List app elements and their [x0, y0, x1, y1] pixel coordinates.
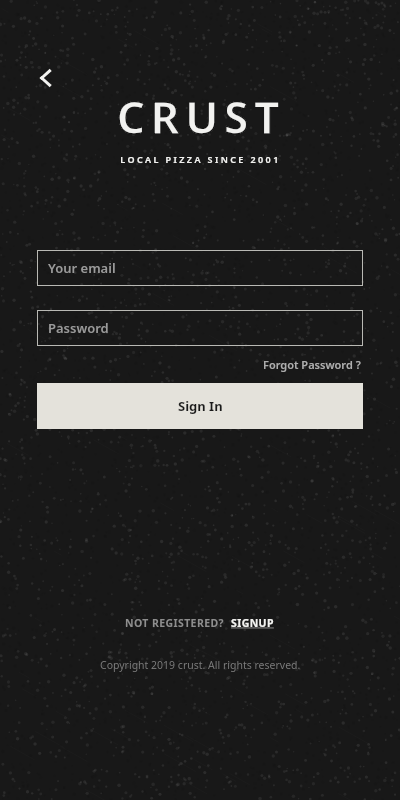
button[interactable]: SIGNUP: [230, 614, 275, 632]
staticText: NOT REGISTERED?: [125, 616, 224, 630]
staticText: Password: [48, 319, 109, 337]
staticText: Your email: [48, 259, 116, 277]
staticText: Forgot Password ?: [263, 357, 361, 372]
button[interactable]: Your email: [37, 250, 363, 286]
button[interactable]: Sign In: [37, 383, 363, 429]
staticText: SIGNUP: [231, 616, 274, 630]
staticText: Copyright 2019 crust. All rights reserve…: [100, 658, 301, 672]
button[interactable]: Back: [28, 60, 64, 96]
button[interactable]: Password: [37, 310, 363, 346]
staticText: LOCAL PIZZA SINCE 2001: [120, 153, 281, 165]
button[interactable]: Forgot Password ?: [261, 355, 363, 374]
staticText: Sign In: [178, 397, 223, 415]
staticText: CRUST: [116, 86, 285, 147]
staticText: CRUST: [116, 86, 285, 147]
